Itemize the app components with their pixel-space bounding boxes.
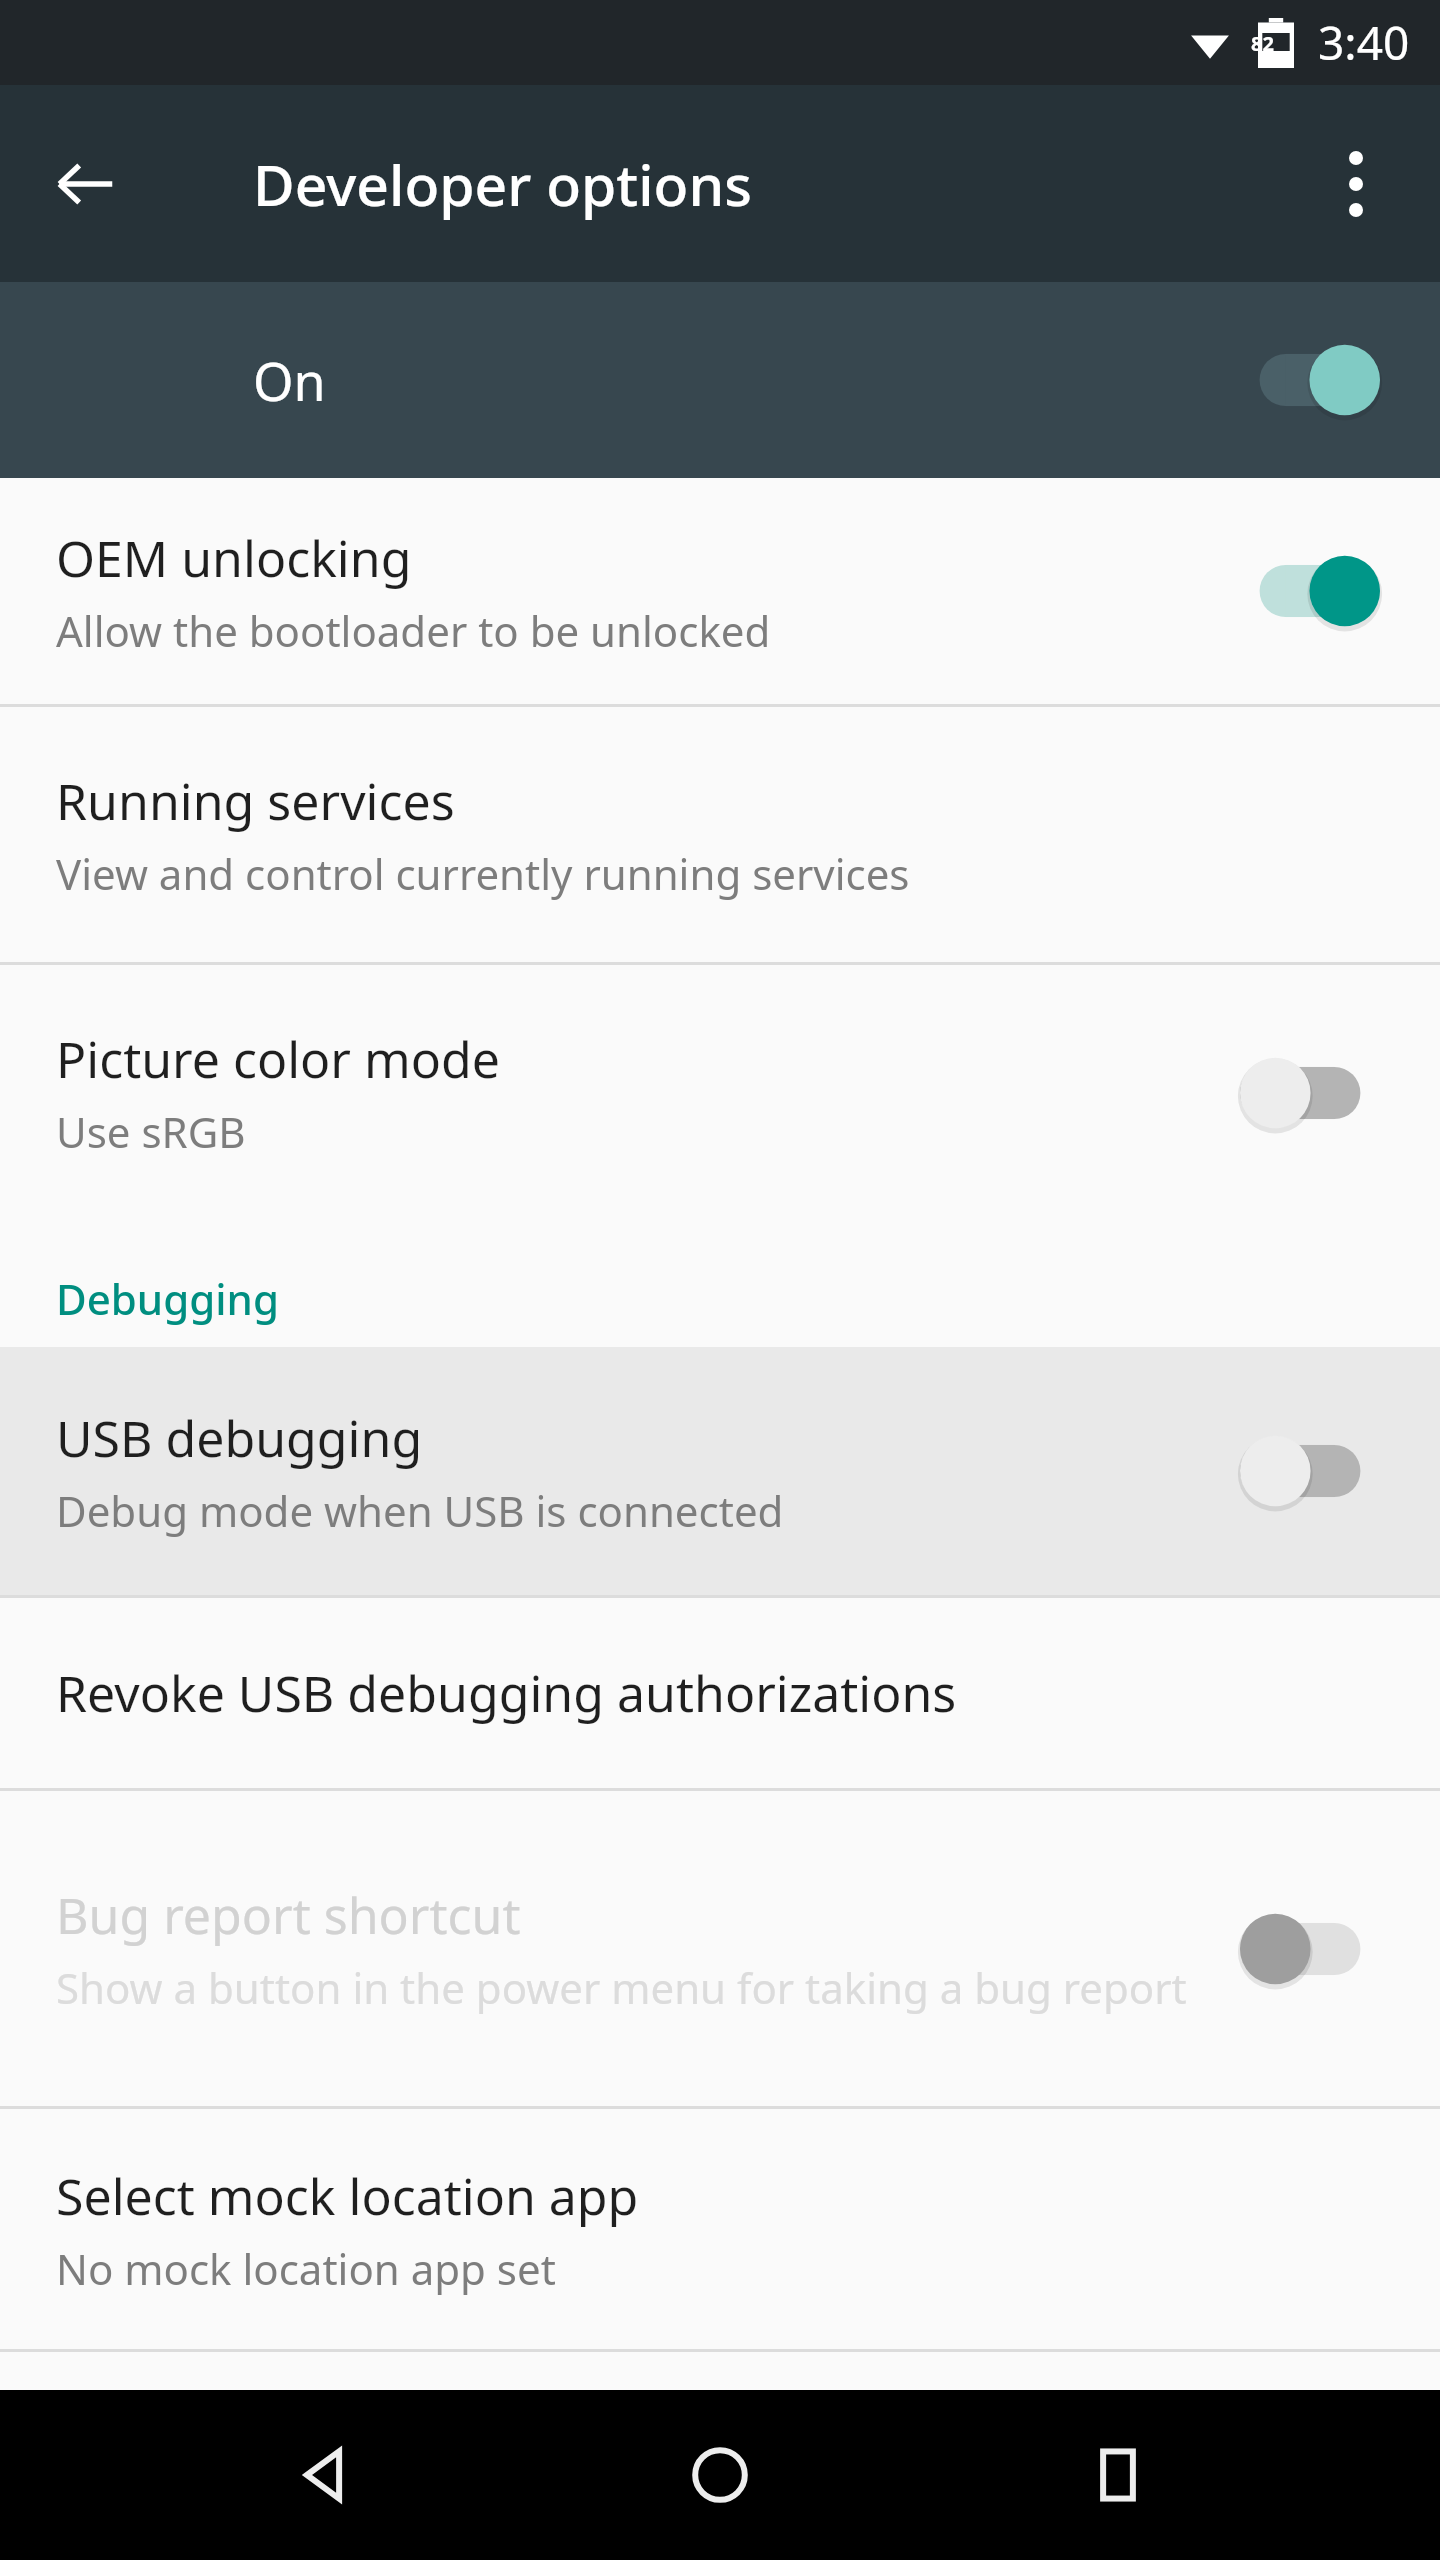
staticText: 3:40 [1318, 11, 1410, 74]
button[interactable]: More options [1308, 136, 1404, 232]
staticText: Bug report shortcut [56, 1881, 521, 1949]
button[interactable]: Bug report shortcut [0, 1791, 1440, 2106]
button[interactable]: Recent apps [1043, 2400, 1193, 2550]
staticText: On [253, 345, 326, 416]
staticText: Revoke USB debugging authorizations [56, 1659, 957, 1727]
button[interactable]: Back [40, 139, 130, 229]
button[interactable]: On [0, 282, 1440, 478]
staticText: Allow the bootloader to be unlocked [56, 602, 771, 659]
staticText: Show a button in the power menu for taki… [56, 1959, 1187, 2016]
button[interactable]: USB debugging [0, 1347, 1440, 1595]
staticText: Developer options [253, 145, 752, 223]
button[interactable]: Picture color mode [0, 965, 1440, 1220]
button[interactable]: OEM unlocking [0, 478, 1440, 704]
button[interactable]: Select mock location app [0, 2109, 1440, 2349]
staticText: Picture color mode [56, 1025, 500, 1093]
staticText: View and control currently running servi… [56, 845, 910, 902]
staticText: USB debugging [56, 1404, 423, 1472]
staticText: OEM unlocking [56, 524, 412, 592]
staticText: Debug mode when USB is connected [56, 1482, 784, 1539]
button[interactable]: Home [645, 2400, 795, 2550]
button[interactable]: Running services [0, 707, 1440, 962]
staticText: Running services [56, 767, 455, 835]
button[interactable]: Back [248, 2400, 398, 2550]
staticText: Debugging [56, 1270, 279, 1327]
button[interactable]: Revoke USB debugging authorizations [0, 1598, 1440, 1788]
staticText: Use sRGB [56, 1103, 246, 1160]
staticText: Select mock location app [56, 2162, 639, 2230]
staticText: No mock location app set [56, 2240, 556, 2297]
staticText: 82 [1251, 30, 1274, 57]
